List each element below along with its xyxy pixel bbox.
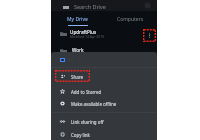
button[interactable]: UpdraftPlus <box>51 27 157 41</box>
staticText: Work <box>72 47 84 53</box>
staticText: Share <box>71 74 83 80</box>
button[interactable] <box>51 0 157 11</box>
staticText: Copy link <box>71 132 90 138</box>
staticText: UpdraftPlus <box>70 29 97 35</box>
staticText: My Drive <box>67 16 88 23</box>
button[interactable]: Share <box>51 70 157 83</box>
staticText: Make available offline <box>71 101 117 107</box>
button[interactable]: Work <box>51 44 157 57</box>
button[interactable]: Copy link <box>51 128 157 140</box>
button[interactable]: Link sharing off <box>51 115 157 128</box>
staticText: Search Drive <box>74 3 106 10</box>
button[interactable]: Computers <box>104 16 157 27</box>
staticText: Add to Starred <box>71 89 102 95</box>
button[interactable]: Add to Starred <box>51 85 157 98</box>
button[interactable]: Navigation menu <box>61 3 70 12</box>
button[interactable]: My Drive <box>51 16 104 27</box>
button[interactable]: Account <box>144 2 151 9</box>
button[interactable]: More options <box>143 29 156 42</box>
staticText: Modified 14 Apr 2019 <box>70 34 105 39</box>
button[interactable]: Make available offline <box>51 97 157 110</box>
staticText: Computers <box>117 16 144 23</box>
staticText: Link sharing off <box>71 119 104 125</box>
